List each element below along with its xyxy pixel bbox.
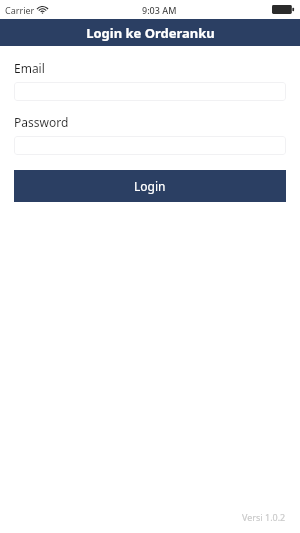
staticText: Password <box>14 114 69 130</box>
staticText: 9:03 AM <box>142 4 177 16</box>
staticText: Carrier <box>5 4 35 16</box>
button[interactable]: Email input field <box>14 82 286 101</box>
button[interactable]: Password input field <box>14 136 286 155</box>
staticText: Login ke Orderanku <box>86 24 215 42</box>
staticText: Versi 1.0.2 <box>242 511 286 523</box>
staticText: Email <box>14 60 45 76</box>
button[interactable]: Login <box>14 170 286 202</box>
staticText: Login <box>134 178 166 194</box>
